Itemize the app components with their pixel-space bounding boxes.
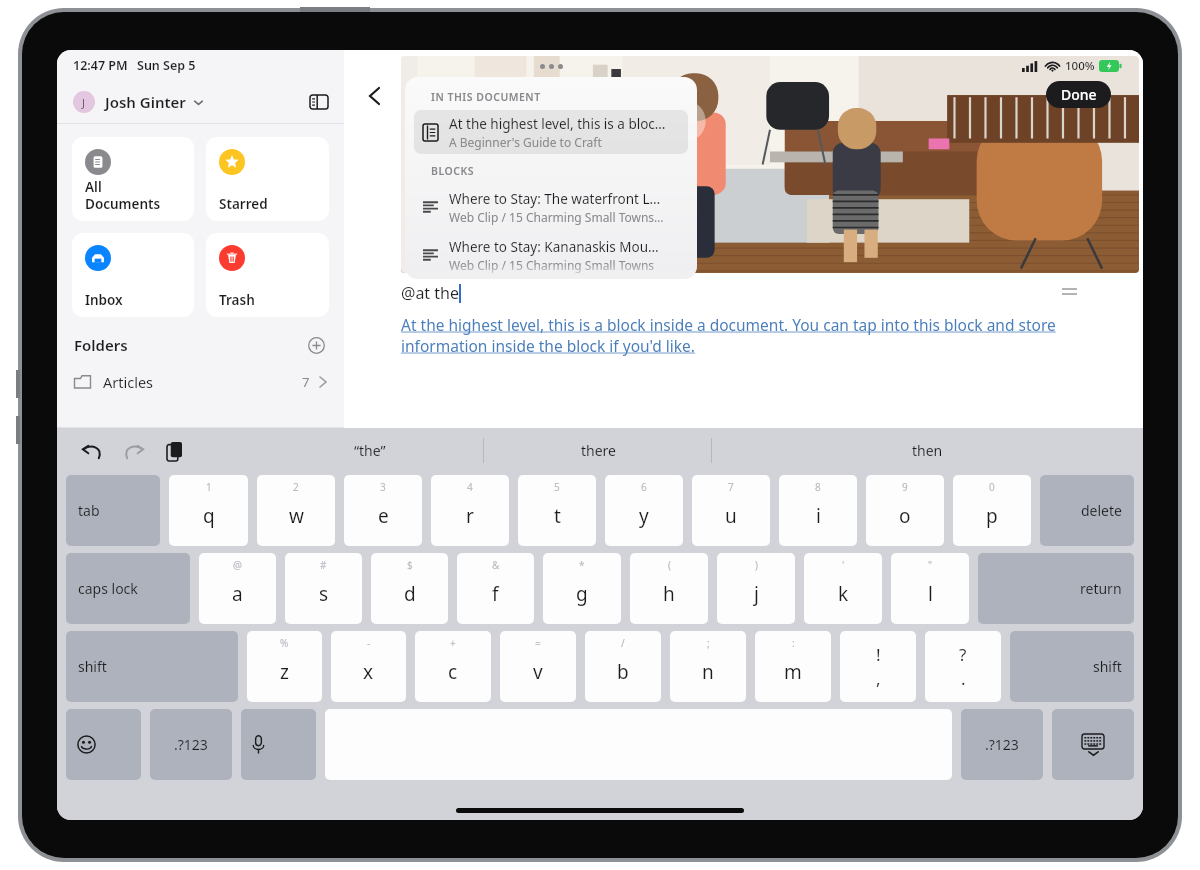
button[interactable]: @: [199, 553, 276, 624]
staticText: =: [535, 636, 541, 650]
staticText: then: [912, 441, 943, 460]
button[interactable]: At the highest level, this is a block in…: [401, 314, 1061, 356]
staticText: 0: [989, 480, 995, 494]
staticText: #: [320, 558, 327, 572]
button[interactable]: “the”: [256, 428, 484, 473]
staticText: y: [639, 503, 649, 529]
button[interactable]: Dictation: [241, 709, 316, 780]
button[interactable]: shift: [66, 631, 238, 702]
staticText: (: [668, 558, 671, 572]
button[interactable]: $: [371, 553, 448, 624]
button[interactable]: 3: [344, 475, 422, 546]
button[interactable]: Where to Stay: Kananaskis Mou…: [405, 234, 697, 276]
staticText: Where to Stay: Kananaskis Mou…: [449, 238, 659, 256]
button[interactable]: 2: [257, 475, 335, 546]
staticText: g: [576, 581, 588, 607]
button[interactable]: caps lock: [66, 553, 190, 624]
staticText: m: [784, 659, 802, 685]
staticText: .: [961, 667, 966, 690]
button[interactable]: 8: [779, 475, 857, 546]
button[interactable]: 4: [431, 475, 509, 546]
button[interactable]: then: [712, 428, 1143, 473]
button[interactable]: Add folder: [305, 334, 327, 356]
button[interactable]: shift: [1010, 631, 1134, 702]
button[interactable]: Paste: [159, 436, 189, 466]
staticText: ?: [959, 643, 967, 666]
button[interactable]: Inbox: [72, 233, 194, 317]
button[interactable]: At the highest level, this is a bloc…: [414, 110, 688, 154]
button[interactable]: 9: [866, 475, 944, 546]
staticText: caps lock: [78, 579, 138, 598]
button[interactable]: (: [630, 553, 708, 624]
button[interactable]: &: [457, 553, 534, 624]
staticText: Done: [1061, 85, 1097, 104]
button[interactable]: Where to Stay: The waterfront L…: [405, 186, 697, 228]
staticText: u: [725, 503, 737, 529]
staticText: BLOCKS: [431, 164, 474, 178]
staticText: tab: [78, 501, 100, 520]
staticText: e: [378, 503, 389, 529]
button[interactable]: ): [717, 553, 795, 624]
button[interactable]: Undo: [77, 436, 107, 466]
button[interactable]: :: [755, 631, 831, 702]
staticText: Where to Stay: The waterfront L…: [449, 190, 661, 208]
button[interactable]: %: [247, 631, 322, 702]
button[interactable]: Hide keyboard: [1052, 709, 1134, 780]
staticText: s: [319, 581, 329, 607]
button[interactable]: 0: [953, 475, 1031, 546]
staticText: !: [876, 643, 881, 666]
button[interactable]: Starred: [206, 137, 329, 221]
staticText: 7: [302, 373, 310, 391]
staticText: o: [899, 503, 911, 529]
staticText: shift: [78, 657, 107, 676]
button[interactable]: /: [585, 631, 661, 702]
button[interactable]: =: [500, 631, 576, 702]
button[interactable]: 5: [518, 475, 596, 546]
staticText: x: [363, 659, 374, 685]
button[interactable]: Back: [358, 80, 390, 112]
staticText: f: [492, 581, 499, 607]
button[interactable]: ": [891, 553, 969, 624]
staticText: 8: [815, 480, 821, 494]
staticText: a: [232, 581, 243, 607]
button[interactable]: #: [285, 553, 362, 624]
button[interactable]: J: [73, 91, 204, 113]
button[interactable]: ?: [925, 631, 1001, 702]
button[interactable]: ;: [670, 631, 746, 702]
button[interactable]: Trash: [206, 233, 329, 317]
staticText: -: [367, 636, 371, 650]
staticText: v: [533, 659, 543, 685]
button[interactable]: .?123: [961, 709, 1043, 780]
button[interactable]: All Documents: [72, 137, 194, 221]
button[interactable]: return: [978, 553, 1134, 624]
button[interactable]: Done: [1046, 81, 1111, 108]
staticText: ;: [707, 636, 710, 650]
staticText: z: [280, 659, 289, 685]
staticText: 100%: [1065, 58, 1095, 74]
button[interactable]: 7: [692, 475, 770, 546]
staticText: n: [702, 659, 714, 685]
button[interactable]: -: [331, 631, 406, 702]
staticText: 4: [467, 480, 473, 494]
staticText: +: [450, 636, 456, 650]
button[interactable]: !: [840, 631, 916, 702]
staticText: delete: [1081, 501, 1122, 520]
button[interactable]: .?123: [150, 709, 232, 780]
button[interactable]: 6: [605, 475, 683, 546]
staticText: Inbox: [85, 291, 123, 309]
button[interactable]: *: [543, 553, 621, 624]
staticText: A Beginner's Guide to Craft: [449, 134, 602, 150]
staticText: .?123: [174, 735, 208, 754]
button[interactable]: Toggle sidebar: [306, 89, 332, 115]
button[interactable]: 1: [169, 475, 248, 546]
button[interactable]: ': [804, 553, 882, 624]
button[interactable]: delete: [1040, 475, 1134, 546]
button[interactable]: Emoji: [66, 709, 141, 780]
button[interactable]: Redo: [118, 436, 148, 466]
staticText: /: [621, 636, 625, 650]
button[interactable]: tab: [66, 475, 160, 546]
button[interactable]: there: [484, 428, 712, 473]
button[interactable]: Articles: [57, 367, 344, 397]
button[interactable]: +: [415, 631, 491, 702]
